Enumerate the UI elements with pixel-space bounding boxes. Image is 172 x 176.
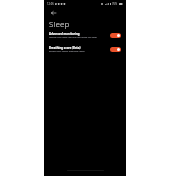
button[interactable]: Toggle	[110, 33, 121, 38]
staticText: Monitor your heart rate and more while y…	[49, 36, 97, 39]
button[interactable]: Advanced monitoring	[44, 28, 126, 42]
button[interactable]: Breathing score (Beta)	[44, 42, 126, 56]
staticText: Sleep	[49, 18, 70, 29]
staticText: Receive your nightly breathing rating	[49, 50, 85, 53]
staticText: 12:06	[47, 2, 54, 6]
staticText: Breathing score (Beta)	[49, 46, 81, 50]
button[interactable]: Toggle	[110, 47, 121, 52]
staticText: 76%	[112, 2, 118, 6]
button[interactable]: Back	[48, 8, 58, 17]
staticText: Advanced monitoring	[49, 32, 80, 36]
